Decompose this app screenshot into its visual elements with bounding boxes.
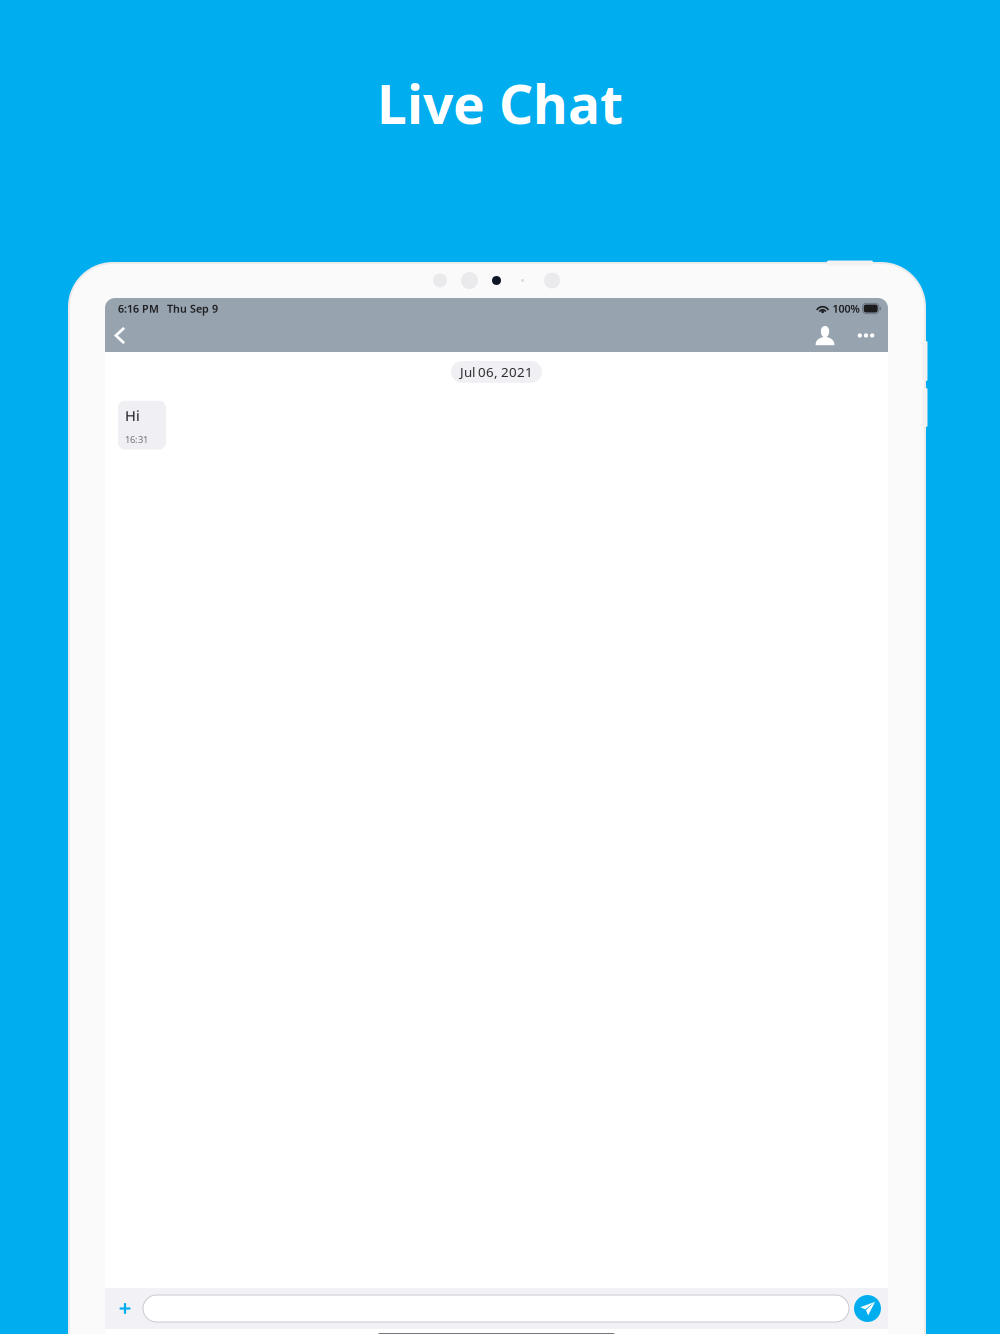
staticText: 16:31 xyxy=(125,433,148,446)
staticText: Thu Sep 9 xyxy=(167,301,218,316)
staticText: Live Chat xyxy=(377,68,623,139)
staticText: Hi xyxy=(125,406,140,425)
button[interactable]: More options xyxy=(849,319,883,352)
button[interactable]: Hi xyxy=(118,401,166,450)
button[interactable]: Send xyxy=(851,1290,884,1326)
staticText: 6:16 PM xyxy=(118,301,159,316)
button[interactable]: Contact xyxy=(807,319,843,352)
button[interactable]: Add attachment xyxy=(110,1290,140,1326)
button[interactable]: Back xyxy=(105,319,135,352)
staticText: 100% xyxy=(833,301,860,316)
staticText: Jul 06, 2021 xyxy=(460,363,533,381)
